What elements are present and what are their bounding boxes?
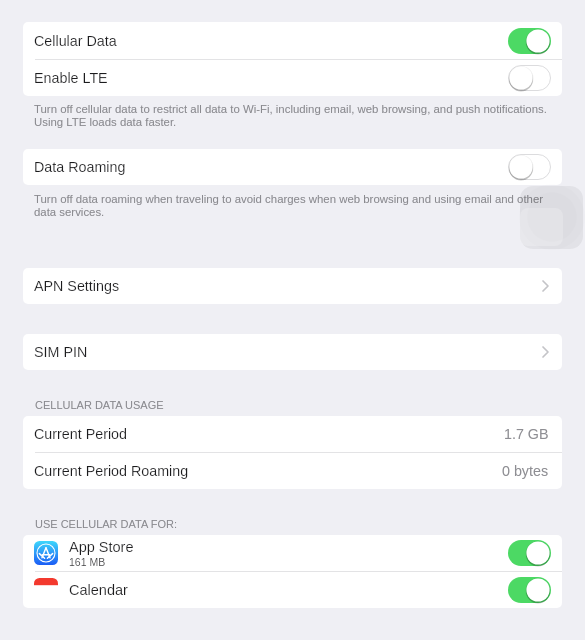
staticText: Cellular Data: [34, 33, 117, 49]
button[interactable]: App Store: [23, 535, 562, 571]
staticText: USE CELLULAR DATA FOR:: [35, 518, 178, 530]
button[interactable]: Current Period: [23, 416, 562, 452]
staticText: Current Period: [34, 426, 127, 442]
staticText: App Store: [69, 539, 134, 556]
button[interactable]: APN Settings: [23, 268, 562, 304]
staticText: Current Period Roaming: [34, 463, 189, 479]
staticText: 0 bytes: [502, 463, 549, 479]
button[interactable]: Data Roaming: [23, 149, 562, 185]
button[interactable]: Cellular Data: [23, 22, 562, 59]
staticText: Data Roaming: [34, 159, 126, 175]
button[interactable]: Switch off: [508, 154, 551, 180]
button[interactable]: Switch on: [508, 540, 551, 566]
staticText: CELLULAR DATA USAGE: [35, 399, 164, 411]
button[interactable]: Enable LTE: [23, 60, 562, 96]
staticText: APN Settings: [34, 278, 120, 294]
button[interactable]: Switch off: [508, 65, 551, 91]
staticText: 1.7 GB: [504, 426, 549, 442]
staticText: Calendar: [69, 582, 128, 599]
staticText: Enable LTE: [34, 70, 108, 86]
staticText: 161 MB: [69, 556, 106, 568]
staticText: SIM PIN: [34, 344, 88, 360]
staticText: Turn off data roaming when traveling to …: [34, 193, 544, 219]
button[interactable]: Current Period Roaming: [23, 453, 562, 489]
button[interactable]: Switch on: [508, 28, 551, 54]
staticText: Turn off cellular data to restrict all d…: [34, 103, 547, 129]
button[interactable]: Calendar: [23, 572, 562, 608]
button[interactable]: Switch on: [508, 577, 551, 603]
button[interactable]: SIM PIN: [23, 334, 562, 370]
